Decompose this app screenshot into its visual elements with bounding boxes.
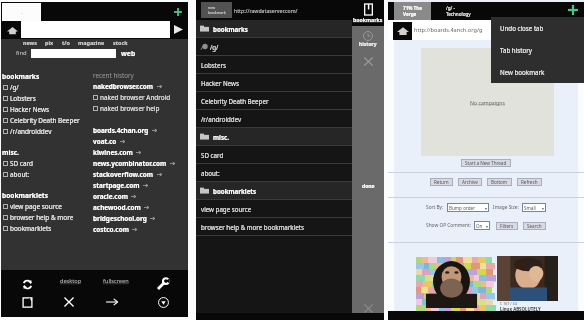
button[interactable]: boards.4chan.org bbox=[93, 125, 157, 136]
button[interactable]: Bump order bbox=[447, 203, 489, 212]
button[interactable]: Filters bbox=[496, 222, 518, 230]
button[interactable]: /g/ bbox=[2, 82, 19, 93]
button[interactable]: Settings bbox=[152, 273, 174, 295]
button[interactable]: Downloads bbox=[152, 291, 174, 313]
button[interactable]: view page source bbox=[2, 201, 62, 212]
button[interactable]: bookmarklets bbox=[196, 182, 352, 199]
button[interactable]: bookmarks bbox=[2, 70, 40, 82]
button[interactable]: SD card bbox=[196, 146, 352, 163]
button[interactable]: bookmarks bbox=[196, 20, 352, 37]
staticText: find bbox=[16, 49, 27, 57]
button[interactable]: nakedbrowser.com bbox=[93, 81, 162, 92]
button[interactable]: Close tab bbox=[58, 291, 80, 313]
button[interactable] bbox=[497, 256, 558, 301]
button[interactable]: fullscreen bbox=[101, 275, 131, 287]
button[interactable]: Refresh bbox=[517, 178, 542, 186]
button[interactable]: naked browser Android bbox=[93, 92, 171, 103]
staticText: new bookmark bbox=[208, 5, 226, 15]
button[interactable]: Search bbox=[523, 222, 546, 230]
button[interactable]: t/o bbox=[58, 39, 74, 46]
button[interactable]: news bbox=[19, 39, 41, 46]
button[interactable]: Return bbox=[430, 178, 453, 186]
button[interactable]: view page source bbox=[196, 200, 352, 217]
button[interactable]: oracle.com bbox=[93, 191, 136, 202]
button[interactable]: http://rawdataserver.com/ bbox=[234, 0, 298, 20]
button[interactable]: SD card bbox=[2, 158, 33, 169]
button[interactable]: klwines.com bbox=[93, 147, 141, 158]
button[interactable]: New tab bbox=[566, 3, 580, 17]
button[interactable]: Home bbox=[393, 22, 412, 40]
button[interactable]: history bbox=[352, 31, 384, 48]
button[interactable]: misc. bbox=[196, 128, 352, 145]
button[interactable]: /g/ bbox=[196, 38, 352, 55]
button[interactable]: Hacker News bbox=[2, 104, 50, 115]
button[interactable]: Small bbox=[522, 203, 546, 212]
button[interactable]: New bookmark bbox=[491, 61, 584, 83]
button[interactable]: desktop bbox=[58, 275, 84, 287]
button[interactable]: Bottom bbox=[487, 178, 512, 186]
staticText: bookmarklets bbox=[213, 187, 257, 195]
staticText: Celebrity Death Beeper bbox=[10, 116, 80, 125]
button[interactable]: stock bbox=[109, 39, 132, 46]
button[interactable]: Go bbox=[171, 22, 185, 36]
button[interactable]: Tab history bbox=[491, 39, 584, 61]
button[interactable]: /r/androiddev bbox=[196, 110, 352, 127]
button[interactable]: browser help & more bookmarklets bbox=[196, 218, 352, 235]
button[interactable]: naked browser help bbox=[93, 103, 160, 114]
button[interactable]: Undo close tab bbox=[491, 17, 584, 39]
button[interactable] bbox=[416, 257, 487, 308]
button[interactable]: Celebrity Death Beeper bbox=[196, 92, 352, 109]
button[interactable]: magazine bbox=[74, 39, 109, 46]
button[interactable]: Lobsters bbox=[196, 56, 352, 73]
staticText: Linux ABSOLUTELY bbox=[500, 306, 541, 312]
button[interactable]: browser help & more bbox=[2, 212, 74, 223]
button[interactable]: Share bbox=[16, 291, 38, 313]
button[interactable]: stackoverflow.com bbox=[93, 169, 162, 180]
button[interactable]: Start a New Thread bbox=[461, 159, 511, 167]
button[interactable]: /r/androiddev bbox=[2, 126, 52, 137]
staticText: view page source bbox=[10, 202, 62, 211]
button[interactable]: Archive bbox=[458, 178, 482, 186]
button[interactable]: new bookmark bbox=[201, 2, 232, 18]
staticText: naked browser Android bbox=[100, 93, 171, 102]
button[interactable]: Dismiss bbox=[352, 302, 384, 314]
button[interactable]: Forward bbox=[101, 291, 123, 313]
button[interactable]: bridgeschool.org bbox=[93, 213, 155, 224]
button[interactable]: Lobsters bbox=[2, 93, 36, 104]
button[interactable]: /g/ - Technology bbox=[435, 2, 481, 20]
button[interactable]: pix bbox=[41, 39, 58, 46]
button[interactable]: startpage.com bbox=[93, 180, 148, 191]
button[interactable]: about: bbox=[196, 164, 352, 181]
button[interactable]: achewood.com bbox=[93, 202, 149, 213]
staticText: oracle.com bbox=[93, 192, 128, 201]
button[interactable]: Home bbox=[3, 21, 21, 39]
button[interactable]: misc. bbox=[2, 146, 19, 158]
button[interactable]: news.ycombinator.com bbox=[93, 158, 175, 169]
button[interactable]: Reload bbox=[16, 273, 38, 295]
button[interactable]: Close bbox=[352, 54, 384, 68]
button[interactable]: bookmarks bbox=[352, 0, 384, 26]
staticText: browser help & more bbox=[10, 213, 74, 222]
button[interactable]: On bbox=[474, 221, 490, 230]
button[interactable]: about: bbox=[2, 169, 30, 180]
button[interactable]: voat.co bbox=[93, 136, 125, 147]
button[interactable]: Celebrity Death Beeper bbox=[2, 115, 80, 126]
button[interactable]: 71% The Verge bbox=[394, 2, 431, 20]
staticText: browser help & more bookmarklets bbox=[201, 223, 304, 231]
button[interactable]: costco.com bbox=[93, 224, 137, 235]
staticText: /g/ bbox=[210, 43, 219, 51]
button[interactable]: bookmarklets bbox=[2, 189, 48, 201]
button[interactable]: web bbox=[121, 49, 136, 58]
staticText: web bbox=[121, 49, 136, 58]
button[interactable]: done bbox=[352, 180, 384, 192]
button[interactable]: http://boards.4anch.org/g bbox=[414, 20, 544, 40]
button[interactable]: New tab bbox=[170, 4, 185, 19]
button[interactable]: bookmarklets bbox=[2, 223, 52, 234]
staticText: /r/androiddev bbox=[201, 115, 242, 123]
button[interactable]: No campaigns bbox=[470, 99, 506, 106]
staticText: fullscreen bbox=[103, 277, 129, 285]
button[interactable]: Hacker News bbox=[196, 74, 352, 91]
